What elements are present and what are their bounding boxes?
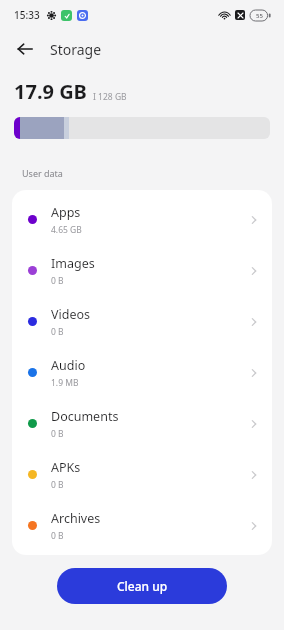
button[interactable]: Videos (12, 296, 272, 347)
button[interactable]: APKs (12, 449, 272, 500)
staticText: Archives (51, 510, 101, 527)
staticText: Documents (51, 408, 119, 425)
staticText: Videos (51, 306, 91, 323)
staticText: 4.65 GB (51, 224, 82, 236)
staticText: APKs (51, 459, 81, 476)
button[interactable]: Clean up (57, 568, 227, 604)
staticText: Apps (51, 204, 81, 221)
button[interactable]: Images (12, 245, 272, 296)
button[interactable]: Back (8, 32, 42, 66)
staticText: Audio (51, 357, 86, 374)
staticText: 0 B (51, 479, 64, 491)
staticText: 17.9 GB (14, 78, 87, 105)
button[interactable]: Apps (12, 194, 272, 245)
staticText: 0 B (51, 326, 64, 338)
staticText: Storage (50, 40, 102, 59)
staticText: 1.9 MB (51, 377, 79, 389)
staticText: Clean up (117, 578, 168, 594)
staticText: 0 B (51, 275, 64, 287)
staticText: 0 B (51, 530, 64, 542)
button[interactable]: Archives (12, 500, 272, 551)
staticText: 55 (256, 12, 263, 20)
staticText: User data (22, 167, 63, 179)
staticText: 15:33 (14, 8, 40, 22)
staticText: 0 B (51, 428, 64, 440)
button[interactable]: Audio (12, 347, 272, 398)
button[interactable]: Documents (12, 398, 272, 449)
staticText: I 128 GB (93, 91, 127, 103)
staticText: Images (51, 255, 95, 272)
